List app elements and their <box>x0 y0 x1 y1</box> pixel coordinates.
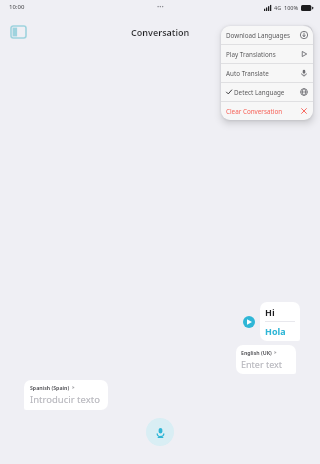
staticText: Play Translations <box>226 50 298 59</box>
button[interactable]: English (UK) <box>236 345 296 374</box>
staticText: Hola <box>265 325 286 337</box>
button[interactable]: View <box>270 23 293 41</box>
button[interactable]: Clear Conversation <box>221 102 313 120</box>
staticText: 10:00 <box>9 3 25 11</box>
button[interactable]: Show sidebar <box>7 21 29 43</box>
staticText: Auto Translate <box>226 69 298 78</box>
button[interactable]: Play translation <box>243 316 255 328</box>
staticText: Detect Language <box>234 88 298 97</box>
button[interactable]: Play Translations <box>221 45 313 63</box>
staticText: ••• <box>157 3 164 11</box>
staticText: English (UK) <box>241 349 272 356</box>
button[interactable]: Hi <box>260 302 300 341</box>
staticText: Download Languages <box>226 31 298 40</box>
staticText: View <box>272 26 291 38</box>
staticText: 100% <box>284 4 299 11</box>
button[interactable]: Detect Language <box>221 83 313 101</box>
staticText: Conversation <box>131 26 190 38</box>
staticText: Introducir texto <box>30 393 100 406</box>
staticText: Hi <box>265 306 275 318</box>
staticText: Enter text <box>241 358 283 370</box>
staticText: 4G <box>274 4 282 11</box>
button[interactable]: More options <box>299 25 313 39</box>
button[interactable]: Spanish (Spain) <box>24 380 108 410</box>
button[interactable]: Record <box>146 418 174 446</box>
button[interactable]: Download Languages <box>221 26 313 44</box>
staticText: Spanish (Spain) <box>30 384 70 391</box>
button[interactable]: Auto Translate <box>221 64 313 82</box>
staticText: Clear Conversation <box>226 107 298 116</box>
